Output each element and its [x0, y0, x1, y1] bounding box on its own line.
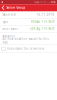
staticText: Type	[2, 20, 8, 23]
button[interactable]: Understand the terms here	[0, 45, 57, 52]
staticText: 508 Ag 11h Shift	[30, 27, 55, 30]
staticText: 16.11.2018	[37, 13, 55, 16]
staticText: 4G	[44, 1, 46, 3]
staticText: 17:45	[47, 1, 51, 3]
staticText: Salem Tech	[2, 13, 16, 16]
staticText: Enter Status	[2, 27, 17, 30]
staticText: Understand the terms here	[7, 47, 45, 50]
staticText: Salem Group	[6, 6, 25, 9]
staticText: 90Gate 17h Shift	[31, 20, 55, 23]
staticText: Activities	[2, 34, 14, 38]
button[interactable]: Back	[0, 4, 6, 11]
staticText: All final deadline was set for this date	[2, 37, 48, 44]
staticText: LTE	[40, 1, 43, 3]
